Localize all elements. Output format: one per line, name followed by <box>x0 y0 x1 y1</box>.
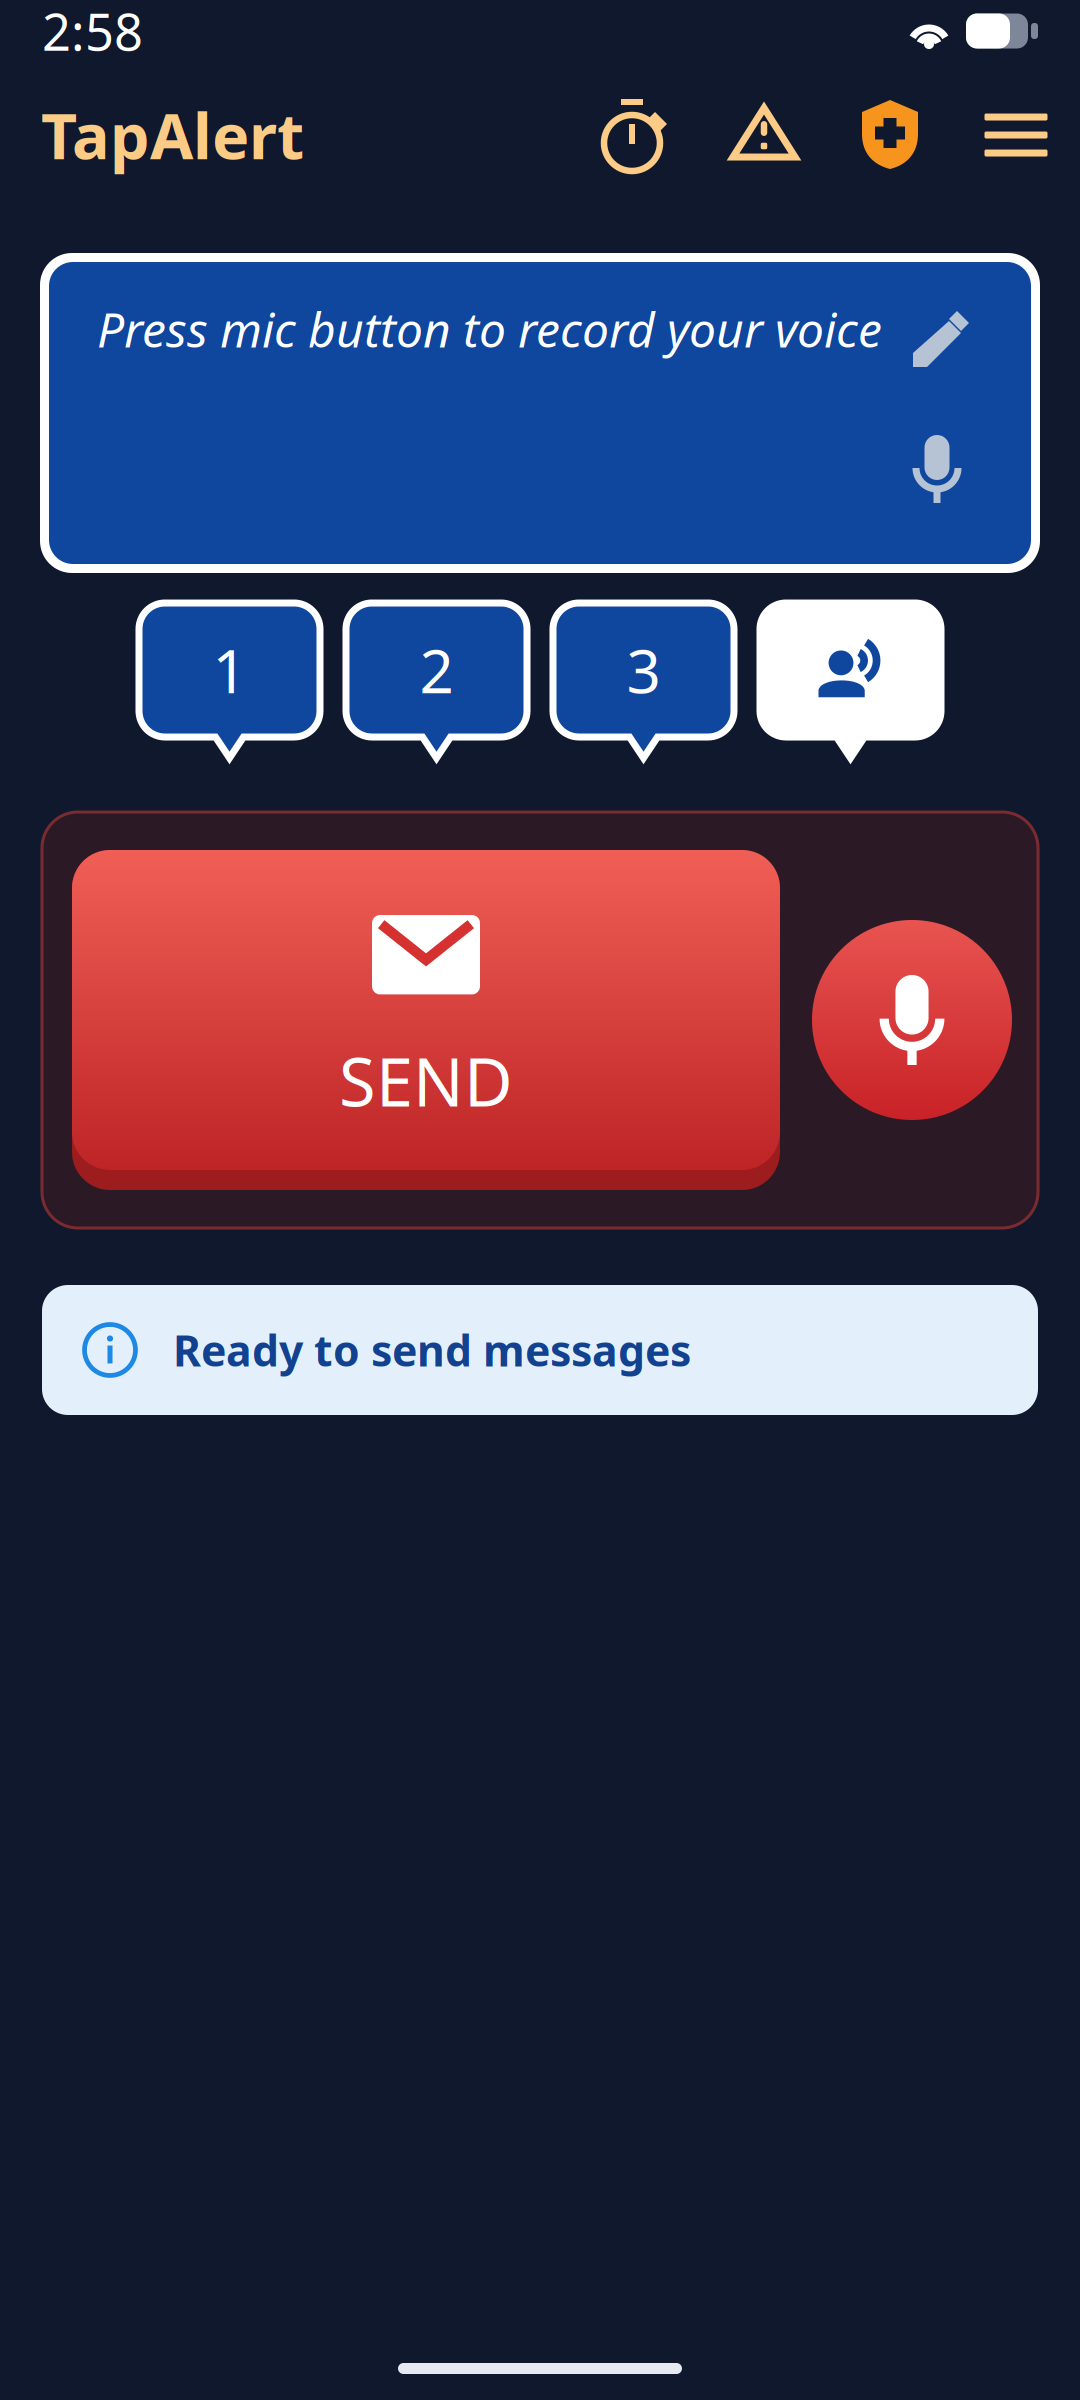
button[interactable]: Timer <box>575 86 701 184</box>
staticText: Ready to send messages <box>173 1322 691 1378</box>
staticText: 2:58 <box>42 0 143 65</box>
staticText: SEND <box>339 1036 513 1125</box>
button[interactable]: Broadcast to all <box>760 603 941 758</box>
staticText: 2 <box>419 630 453 710</box>
button[interactable]: 1 <box>139 603 320 758</box>
staticText: Press mic button to record your voice <box>97 297 882 361</box>
button[interactable]: 2 <box>346 603 527 758</box>
button[interactable]: Alerts <box>701 86 827 184</box>
staticText: 1 <box>212 630 246 710</box>
button[interactable]: 3 <box>553 603 734 758</box>
button[interactable]: SEND <box>72 850 780 1190</box>
button[interactable]: Record voice <box>812 920 1012 1120</box>
staticText: 3 <box>626 630 660 710</box>
button[interactable]: Menu <box>953 86 1079 184</box>
button[interactable]: Emergency <box>827 86 953 184</box>
staticText: TapAlert <box>41 93 304 177</box>
